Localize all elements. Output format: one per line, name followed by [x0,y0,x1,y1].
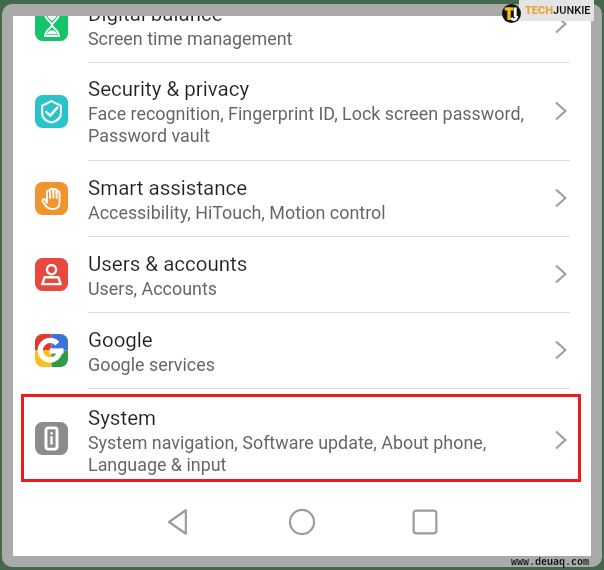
button[interactable]: Smart assistance [13,160,591,236]
button[interactable]: Digital balance [13,16,591,62]
button[interactable]: Recent apps [402,499,448,545]
button[interactable]: System [13,388,591,492]
staticText: Google services [88,354,215,375]
staticText: Accessibility, HiTouch, Motion control [88,202,386,223]
button[interactable]: Users & accounts [13,236,591,312]
staticText: Security & privacy [88,77,250,101]
staticText: JUNKIE [553,4,591,17]
button[interactable]: Google [13,312,591,388]
staticText: www.deuaq.com [511,554,589,568]
button[interactable]: Security & privacy [13,62,591,160]
staticText: System navigation, Software update, Abou… [88,432,487,476]
button[interactable]: Home [279,499,325,545]
staticText: Smart assistance [88,176,248,200]
staticText: TECH [525,4,553,17]
staticText: Screen time management [88,28,293,49]
button[interactable]: Back [155,499,201,545]
staticText: Users, Accounts [88,278,218,299]
staticText: Face recognition, Fingerprint ID, Lock s… [88,103,524,147]
staticText: System [88,406,157,430]
staticText: Google [88,328,153,352]
staticText: Users & accounts [88,252,248,276]
staticText: Digital balance [88,16,223,26]
